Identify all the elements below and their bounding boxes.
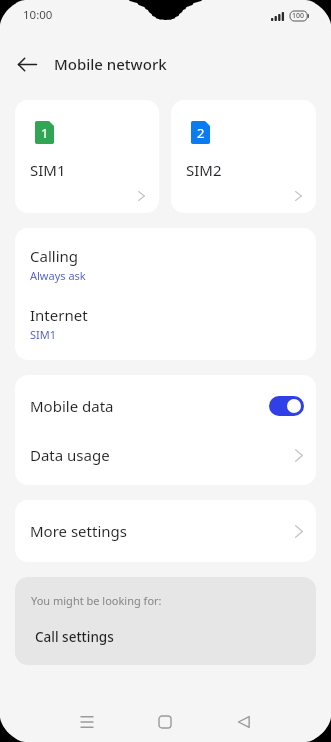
- staticText: 1: [41, 124, 49, 142]
- button[interactable]: Calling: [15, 228, 316, 287]
- staticText: Always ask: [30, 268, 86, 283]
- staticText: More settings: [30, 521, 127, 541]
- button[interactable]: Data usage: [15, 431, 316, 479]
- button[interactable]: Back: [222, 701, 266, 742]
- button[interactable]: Home: [143, 701, 187, 742]
- staticText: SIM1: [30, 327, 57, 342]
- staticText: Calling: [30, 246, 79, 266]
- button[interactable]: Internet: [15, 287, 316, 346]
- button[interactable]: Mobile data: [15, 375, 316, 437]
- button[interactable]: More settings: [15, 500, 316, 562]
- staticText: SIM1: [30, 160, 66, 180]
- button[interactable]: Back: [0, 37, 54, 91]
- button[interactable]: Recent apps: [65, 701, 109, 742]
- staticText: SIM2: [186, 160, 222, 180]
- button[interactable]: 1: [15, 100, 159, 213]
- staticText: Internet: [30, 305, 88, 325]
- staticText: Call settings: [35, 628, 114, 646]
- staticText: 2: [197, 124, 205, 142]
- button[interactable]: Mobile data toggle: [269, 396, 304, 416]
- staticText: Data usage: [30, 445, 110, 465]
- staticText: You might be looking for:: [31, 593, 162, 608]
- staticText: 100: [292, 11, 305, 21]
- button[interactable]: 2: [171, 100, 316, 213]
- staticText: Mobile data: [30, 396, 114, 416]
- staticText: Mobile network: [54, 54, 167, 74]
- staticText: 10:00: [23, 7, 53, 23]
